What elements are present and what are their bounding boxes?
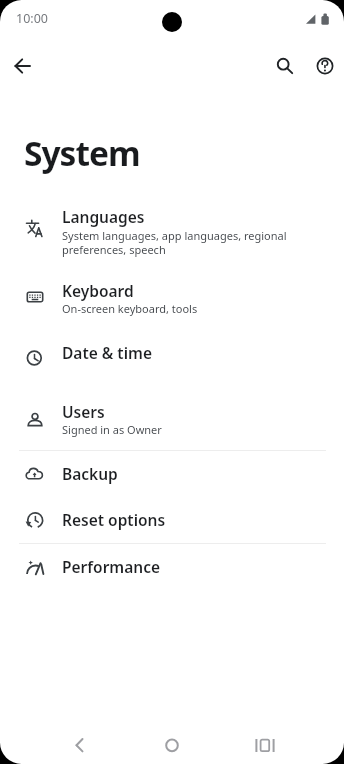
staticText: Languages	[62, 206, 145, 227]
button[interactable]	[58, 725, 98, 764]
button[interactable]	[0, 452, 344, 496]
staticText: Keyboard	[62, 280, 134, 301]
staticText: Users	[62, 401, 105, 422]
button[interactable]	[0, 394, 344, 444]
staticText: Performance	[62, 556, 161, 577]
staticText: System	[24, 130, 140, 176]
button[interactable]	[0, 198, 344, 262]
staticText: Backup	[62, 463, 118, 484]
button[interactable]	[309, 50, 341, 82]
staticText: System languages, app languages, regiona…	[62, 228, 287, 257]
staticText: Date & time	[62, 342, 152, 363]
button[interactable]	[6, 50, 38, 82]
button[interactable]	[0, 272, 344, 320]
button[interactable]	[269, 50, 301, 82]
button[interactable]	[0, 332, 344, 380]
staticText: On-screen keyboard, tools	[62, 301, 198, 316]
staticText: Signed in as Owner	[62, 422, 162, 437]
button[interactable]	[0, 545, 344, 589]
staticText: 10:00	[16, 10, 48, 27]
staticText: Reset options	[62, 509, 166, 530]
button[interactable]	[152, 725, 192, 764]
button[interactable]	[0, 498, 344, 542]
button[interactable]	[245, 725, 285, 764]
